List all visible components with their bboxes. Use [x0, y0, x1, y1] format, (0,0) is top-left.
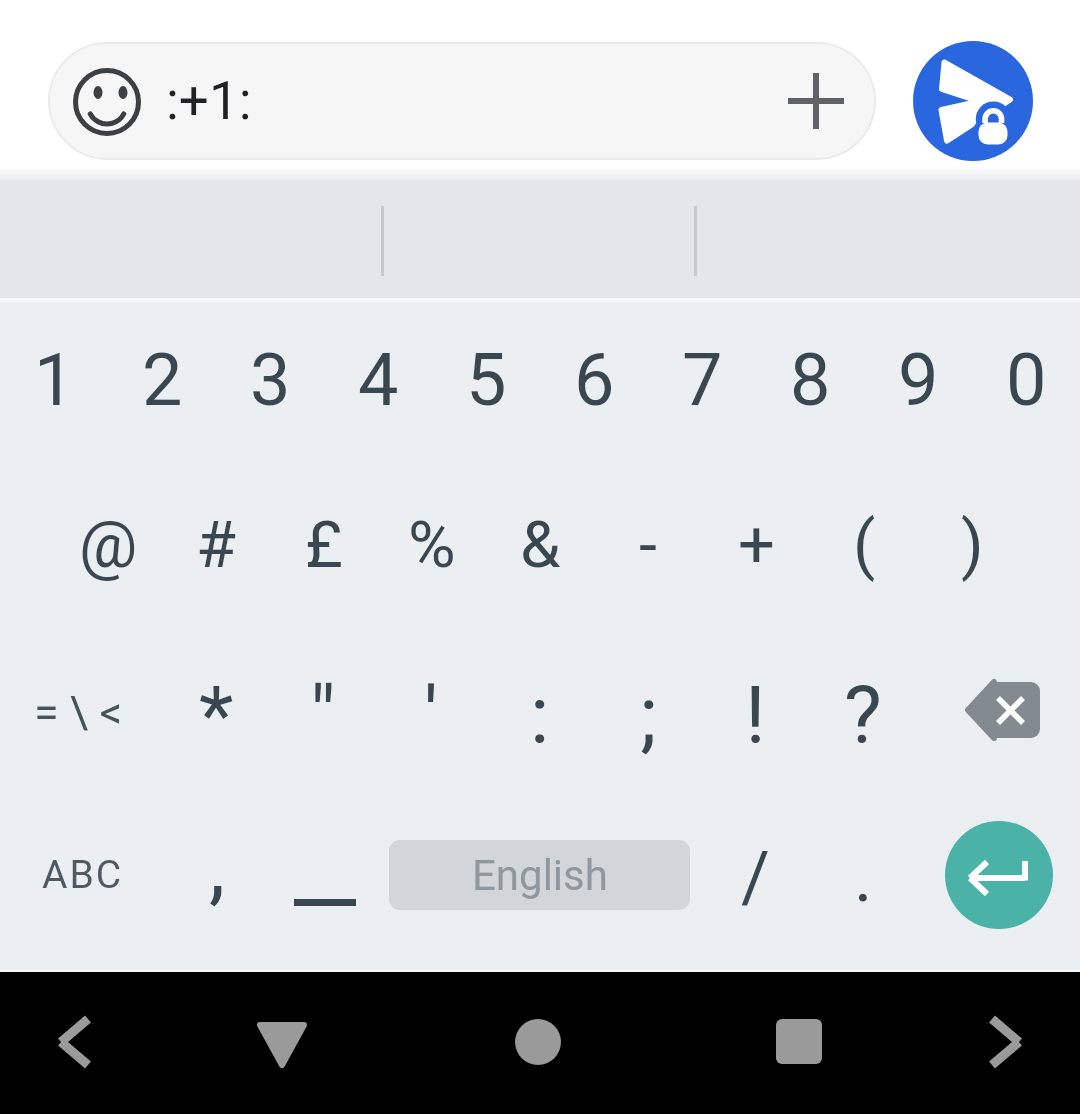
staticText: 4: [358, 338, 399, 422]
staticText: 0: [1006, 338, 1047, 422]
staticText: 3: [250, 338, 291, 422]
staticText: 8: [790, 338, 831, 422]
staticText: !: [745, 669, 766, 763]
staticText: ): [961, 507, 984, 583]
staticText: 2: [142, 338, 183, 422]
staticText: ": [310, 669, 336, 763]
staticText: = \ <: [34, 686, 123, 739]
staticText: 6: [574, 338, 615, 422]
staticText: £: [305, 507, 343, 583]
staticText: ;: [640, 669, 657, 763]
staticText: ,: [209, 819, 226, 915]
staticText: :+1:: [166, 70, 252, 132]
staticText: &: [520, 507, 561, 583]
staticText: @: [79, 507, 138, 583]
staticText: ABC: [42, 852, 124, 898]
staticText: /: [741, 836, 770, 918]
staticText: ?: [844, 669, 882, 763]
staticText: ': [424, 669, 438, 763]
staticText: 9: [898, 338, 939, 422]
staticText: +: [738, 507, 775, 583]
staticText: #: [196, 507, 237, 583]
staticText: %: [408, 507, 456, 583]
staticText: English: [472, 851, 608, 900]
staticText: 7: [682, 338, 723, 422]
staticText: .: [854, 836, 873, 918]
staticText: 1: [34, 338, 75, 422]
staticText: 5: [466, 338, 507, 422]
staticText: :: [530, 669, 550, 763]
staticText: *: [199, 669, 234, 763]
staticText: -: [639, 507, 657, 583]
staticText: (: [853, 507, 876, 583]
